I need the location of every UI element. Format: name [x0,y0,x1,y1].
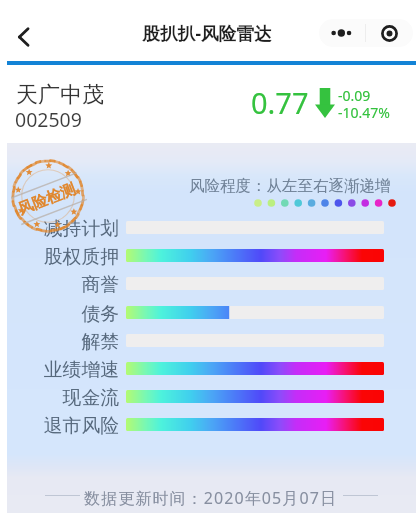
button[interactable]: More [319,19,365,47]
staticText: 0.77 [251,83,309,122]
button[interactable]: Locate [366,19,413,47]
staticText: -0.09 [338,86,371,105]
staticText: 股权质押 [7,245,119,269]
staticText: 解禁 [7,330,119,354]
staticText: 数据更新时间：2020年05月07日 [84,487,338,509]
staticText: 退市风险 [7,414,119,438]
staticText: 股扒扒-风险雷达 [107,21,307,45]
staticText: 现金流 [7,386,119,410]
staticText: 减持计划 [7,217,119,241]
staticText: 商誉 [7,273,119,297]
staticText: -10.47% [338,103,390,122]
staticText: 天广中茂 [16,81,104,109]
staticText: 业绩增速 [7,358,119,382]
button[interactable]: Back [7,21,39,53]
staticText: 风险检测 [16,180,78,219]
staticText: 债务 [7,302,119,326]
staticText: 002509 [15,106,82,133]
staticText: 风险程度：从左至右逐渐递增 [189,176,391,196]
